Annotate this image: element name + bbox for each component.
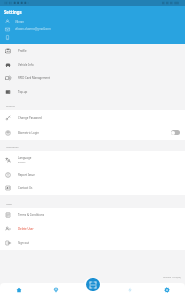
button[interactable]: Change Password: [0, 110, 185, 125]
staticText: Change Password: [18, 116, 42, 120]
staticText: Report Issue: [18, 173, 35, 177]
staticText: Security: [6, 104, 15, 107]
button[interactable]: Language: [0, 151, 185, 168]
button[interactable]: Charging: [111, 283, 148, 296]
staticText: Terms & Conditions: [18, 213, 45, 217]
button[interactable]: Contact Us: [0, 181, 185, 195]
button[interactable]: Sign out: [0, 236, 185, 250]
button[interactable]: Home: [0, 283, 37, 296]
staticText: Legal: [6, 202, 13, 205]
button[interactable]: Settings: [148, 283, 185, 296]
staticText: Vehicle Info: [18, 63, 34, 67]
button[interactable]: [171, 130, 180, 135]
staticText: Sign out: [18, 241, 30, 245]
button[interactable]: Terms & Conditions: [0, 208, 185, 222]
staticText: RFID Card Management: [18, 76, 50, 80]
button[interactable]: Report Issue: [0, 168, 185, 181]
button[interactable]: RFID Card Management: [0, 71, 185, 85]
staticText: Contact Us: [18, 186, 33, 190]
staticText: vikram.sharma@gmail.com: [15, 27, 51, 31]
staticText: English: [18, 161, 26, 164]
staticText: Application: [6, 145, 19, 148]
staticText: Version 1.0.5(63): [163, 276, 181, 279]
button[interactable]: Vehicle Info: [0, 58, 185, 71]
staticText: Language: [18, 156, 32, 160]
staticText: Profile: [18, 49, 27, 53]
staticText: Delete User: [18, 227, 34, 231]
staticText: Vikram: [15, 20, 25, 24]
button[interactable]: Scan QR: [86, 278, 100, 291]
button[interactable]: Map: [37, 283, 74, 296]
staticText: Settings: [4, 9, 22, 15]
staticText: Biometric Login: [18, 131, 40, 135]
button[interactable]: Profile: [0, 44, 185, 58]
button[interactable]: Biometric Login: [0, 125, 185, 140]
staticText: Top-up: [18, 90, 28, 94]
button[interactable]: Top-up: [0, 85, 185, 98]
button[interactable]: Delete User: [0, 222, 185, 236]
